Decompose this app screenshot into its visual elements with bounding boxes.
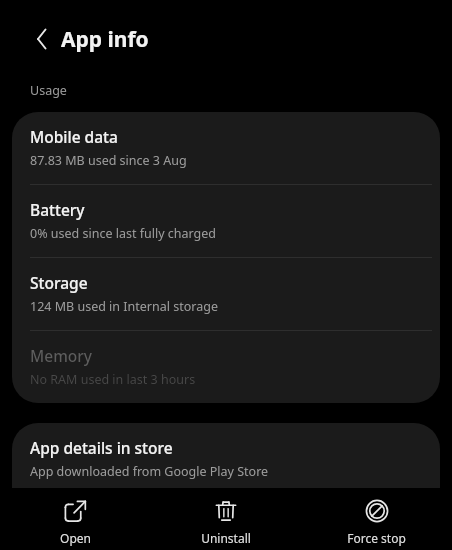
staticText: Usage — [30, 82, 67, 99]
staticText: Open — [60, 530, 91, 546]
staticText: App info — [61, 25, 149, 54]
button[interactable]: Back — [22, 20, 60, 58]
button[interactable]: Battery — [12, 185, 440, 257]
button[interactable]: Open — [0, 488, 150, 550]
staticText: Uninstall — [201, 530, 251, 546]
staticText: App details in store — [30, 437, 173, 458]
staticText: Mobile data — [30, 126, 118, 147]
staticText: In-app notification settings — [30, 510, 231, 531]
staticText: No RAM used in last 3 hours — [30, 371, 196, 388]
staticText: 124 MB used in Internal storage — [30, 298, 218, 315]
button[interactable]: Storage — [12, 258, 440, 330]
button[interactable]: In-app notification settings — [12, 496, 440, 546]
staticText: App downloaded from Google Play Store — [30, 463, 269, 480]
staticText: 87.83 MB used since 3 Aug — [30, 152, 187, 169]
staticText: 0% used since last fully charged — [30, 225, 217, 242]
button[interactable]: Uninstall — [150, 488, 301, 550]
button[interactable]: Force stop — [301, 488, 452, 550]
button[interactable]: Mobile data — [12, 112, 440, 184]
button[interactable]: Memory — [12, 331, 440, 403]
staticText: Force stop — [347, 530, 406, 546]
staticText: Memory — [30, 345, 93, 366]
button[interactable]: App details in store — [12, 423, 440, 495]
staticText: Storage — [30, 272, 88, 293]
staticText: Battery — [30, 199, 85, 220]
